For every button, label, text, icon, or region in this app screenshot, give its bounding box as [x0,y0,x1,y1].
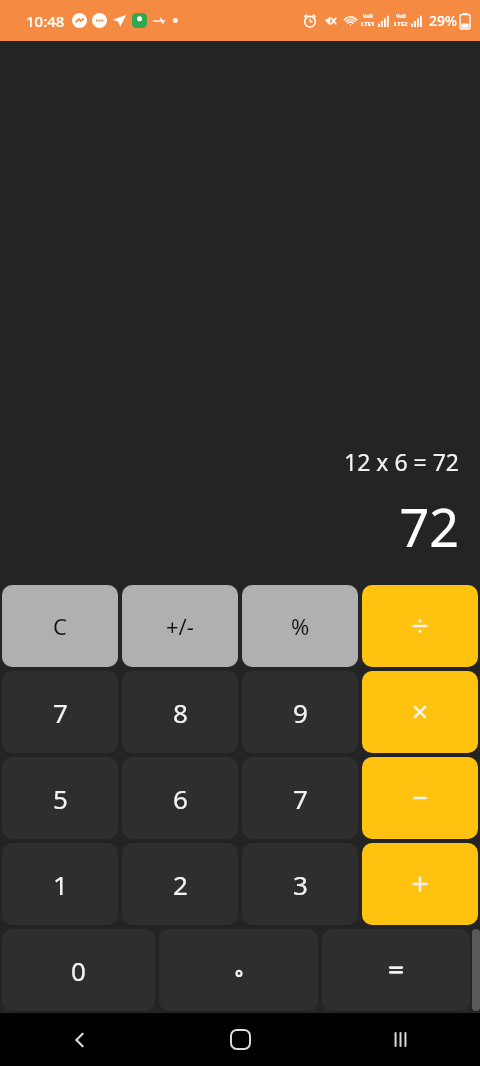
staticText: 1 [53,867,68,902]
staticText: VoD [396,13,406,20]
staticText: LTE2 [394,20,408,28]
button[interactable]: Equals [322,929,470,1011]
button[interactable]: 3 [242,843,358,925]
button[interactable]: 1 [2,843,118,925]
staticText: 29% [429,11,457,30]
button[interactable]: Divide [362,585,478,667]
button[interactable]: C [2,585,118,667]
staticText: 8 [173,695,188,730]
staticText: LTE1 [361,20,375,28]
button[interactable]: 5 [2,757,118,839]
staticText: % [291,611,310,641]
staticText: 9 [293,695,308,730]
button[interactable]: Home [160,1013,320,1066]
button[interactable]: 7 [2,671,118,753]
staticText: 6 [173,781,188,816]
staticText: 5 [53,781,68,816]
button[interactable]: 0 [2,929,155,1011]
button[interactable]: Decimal point [159,929,318,1011]
button[interactable]: Back [0,1013,160,1066]
button[interactable]: Recent apps [320,1013,480,1066]
staticText: 10:48 [26,11,65,31]
staticText: 7 [53,695,68,730]
staticText: VoD [363,13,373,20]
button[interactable]: 7 [242,757,358,839]
staticText: 2 [173,867,188,902]
button[interactable]: 2 [122,843,238,925]
button[interactable]: 8 [122,671,238,753]
staticText: 12 x 6 = 72 [343,446,459,477]
button[interactable]: +/- [122,585,238,667]
staticText: C [53,611,67,641]
button[interactable]: % [242,585,358,667]
button[interactable]: 6 [122,757,238,839]
button[interactable]: Plus [362,843,478,925]
staticText: +/- [166,611,194,641]
button[interactable]: Minus [362,757,478,839]
staticText: 3 [293,867,308,902]
button[interactable]: 9 [242,671,358,753]
staticText: 0 [71,953,86,988]
staticText: 72 [399,491,459,562]
button[interactable]: Multiply [362,671,478,753]
staticText: 7 [293,781,308,816]
